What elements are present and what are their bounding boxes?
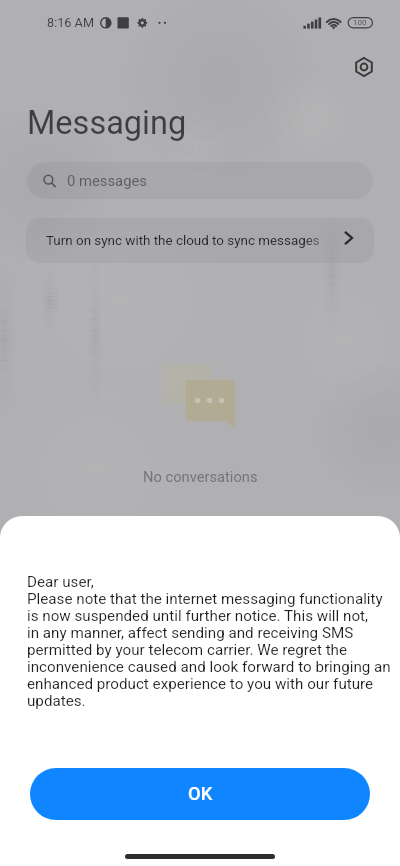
button[interactable]: Turn on sync with the cloud to sync mess… (26, 218, 374, 263)
staticText: Messaging (27, 104, 187, 142)
button[interactable]: OK (30, 768, 370, 820)
button[interactable]: Settings (353, 56, 375, 78)
staticText: No conversations (143, 468, 258, 485)
staticText: Dear user, Please note that the internet… (27, 573, 391, 710)
staticText: 0 messages (67, 172, 147, 189)
staticText: 8:16 AM (47, 15, 94, 30)
button[interactable]: 0 messages (27, 162, 373, 199)
staticText: 100 (353, 18, 367, 27)
staticText: OK (188, 783, 213, 805)
staticText: Turn on sync with the cloud to sync mess… (46, 233, 320, 249)
